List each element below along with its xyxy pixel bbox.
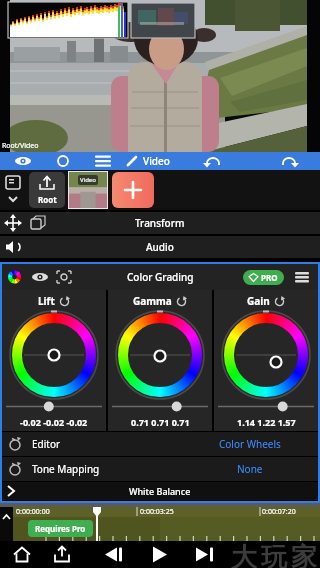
staticText: -0.02 -0.02 -0.02 — [20, 416, 88, 428]
button[interactable]: White Balance — [2, 482, 318, 500]
staticText: Root/Video — [2, 141, 39, 151]
button[interactable] — [0, 152, 160, 170]
button[interactable] — [160, 152, 320, 170]
button[interactable]: Editor — [2, 432, 318, 456]
button[interactable]: Root — [29, 172, 65, 208]
staticText: Color Grading — [127, 270, 194, 284]
staticText: Tone Mapping — [32, 462, 100, 476]
staticText: 大玩家 — [229, 541, 319, 568]
button[interactable]: Video — [69, 172, 107, 208]
staticText: Transform — [135, 216, 185, 230]
staticText: 0:00:03:25 — [140, 507, 174, 517]
staticText: Color Wheels — [219, 437, 281, 451]
staticText: Gain — [247, 294, 270, 308]
button[interactable] — [112, 172, 154, 208]
button[interactable]: Gamma — [108, 290, 212, 431]
button[interactable] — [213, 541, 320, 568]
button[interactable] — [294, 269, 310, 285]
staticText: Lift — [38, 294, 55, 308]
staticText: White Balance — [129, 485, 191, 497]
button[interactable]: Gain — [214, 290, 318, 431]
staticText: 0.71 0.71 0.71 — [131, 416, 190, 428]
button[interactable]: Requires Pro — [28, 520, 93, 537]
staticText: Editor — [32, 437, 61, 451]
button[interactable] — [0, 541, 106, 568]
button[interactable]: Transform — [0, 212, 320, 234]
button[interactable]: Audio — [0, 236, 320, 258]
staticText: None — [237, 462, 263, 476]
staticText: 0:00:07:20 — [262, 507, 296, 517]
staticText: Requires Pro — [35, 523, 86, 534]
button[interactable]: Tone Mapping — [2, 457, 318, 481]
staticText: 0:00:00:00 — [16, 507, 50, 517]
staticText: Audio — [146, 240, 174, 254]
button[interactable]: Lift — [2, 290, 106, 431]
staticText: Root — [38, 194, 57, 205]
staticText: PRO — [261, 272, 278, 283]
staticText: Gamma — [133, 294, 172, 308]
staticText: Video — [143, 154, 170, 168]
button[interactable] — [106, 541, 213, 568]
staticText: Video — [80, 176, 96, 184]
button[interactable]: PRO — [243, 270, 284, 285]
staticText: 1.14 1.22 1.57 — [237, 416, 296, 428]
